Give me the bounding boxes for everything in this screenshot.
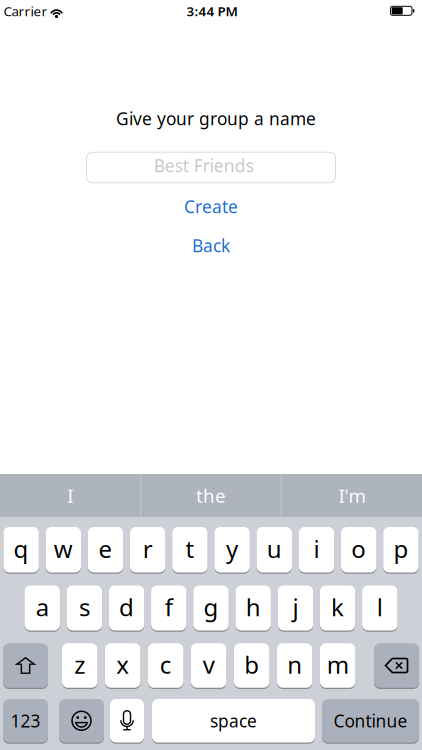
staticText: space (210, 709, 257, 732)
button[interactable]: f (151, 585, 186, 630)
button[interactable]: m (320, 643, 355, 688)
staticText: Continue (333, 709, 407, 732)
staticText: 3:44 PM (186, 2, 237, 20)
staticText: i (313, 533, 319, 565)
staticText: h (246, 591, 261, 623)
staticText: u (267, 533, 282, 565)
staticText: I'm (338, 483, 365, 508)
button[interactable]: u (257, 527, 292, 572)
button[interactable]: e (88, 527, 123, 572)
staticText: I (67, 483, 73, 508)
button[interactable]: Back (192, 234, 230, 257)
button[interactable]: r (130, 527, 165, 572)
button[interactable]: I (1, 474, 139, 517)
staticText: x (116, 649, 129, 680)
button[interactable]: s (67, 585, 102, 630)
staticText: v (203, 649, 215, 680)
button[interactable]: t (172, 527, 208, 572)
button[interactable]: n (277, 643, 312, 688)
staticText: Back (192, 234, 230, 257)
staticText: c (160, 649, 172, 680)
button[interactable]: Delete (374, 643, 419, 688)
staticText: r (143, 533, 153, 565)
staticText: b (244, 649, 259, 680)
staticText: y (226, 533, 238, 565)
button[interactable]: space (152, 699, 315, 742)
staticText: f (165, 591, 173, 623)
button[interactable]: i (299, 527, 334, 572)
staticText: z (74, 649, 85, 680)
staticText: 123 (10, 709, 40, 732)
button[interactable]: d (109, 585, 144, 630)
staticText: d (119, 591, 134, 623)
button[interactable]: j (278, 585, 313, 630)
staticText: Carrier (3, 2, 47, 20)
button[interactable]: a (24, 585, 60, 630)
button[interactable]: v (191, 643, 226, 688)
staticText: t (185, 533, 194, 565)
button[interactable]: x (105, 643, 140, 688)
button[interactable]: Create (184, 195, 238, 218)
button[interactable]: g (193, 585, 229, 630)
button[interactable]: o (341, 527, 376, 572)
button[interactable]: l (362, 585, 397, 630)
staticText: a (36, 591, 49, 623)
button[interactable]: z (62, 643, 97, 688)
button[interactable]: the (142, 474, 280, 517)
staticText: Create (184, 195, 238, 218)
staticText: Best Friends (154, 154, 254, 177)
staticText: p (393, 533, 408, 565)
staticText: the (196, 483, 226, 508)
staticText: l (377, 591, 383, 623)
button[interactable]: k (320, 585, 355, 630)
button[interactable]: Shift (3, 643, 48, 688)
button[interactable]: Continue (322, 699, 419, 742)
staticText: q (14, 533, 29, 565)
button[interactable]: Group name (86, 152, 336, 183)
staticText: o (351, 533, 366, 565)
staticText: n (287, 649, 302, 680)
staticText: m (327, 649, 349, 680)
staticText: w (54, 533, 73, 565)
button[interactable]: Emoji (59, 699, 104, 742)
button[interactable]: b (234, 643, 269, 688)
staticText: j (292, 591, 298, 623)
staticText: s (79, 591, 90, 623)
button[interactable]: I'm (283, 474, 421, 517)
button[interactable]: q (3, 527, 39, 572)
button[interactable]: h (235, 585, 271, 630)
button[interactable]: Numbers (3, 699, 48, 742)
button[interactable]: w (46, 527, 81, 572)
button[interactable]: c (148, 643, 183, 688)
staticText: e (98, 533, 112, 565)
button[interactable]: p (383, 527, 419, 572)
staticText: g (203, 591, 218, 623)
button[interactable]: Dictate (110, 699, 144, 742)
staticText: k (331, 591, 344, 623)
button[interactable]: y (214, 527, 250, 572)
staticText: Give your group a name (116, 107, 316, 130)
